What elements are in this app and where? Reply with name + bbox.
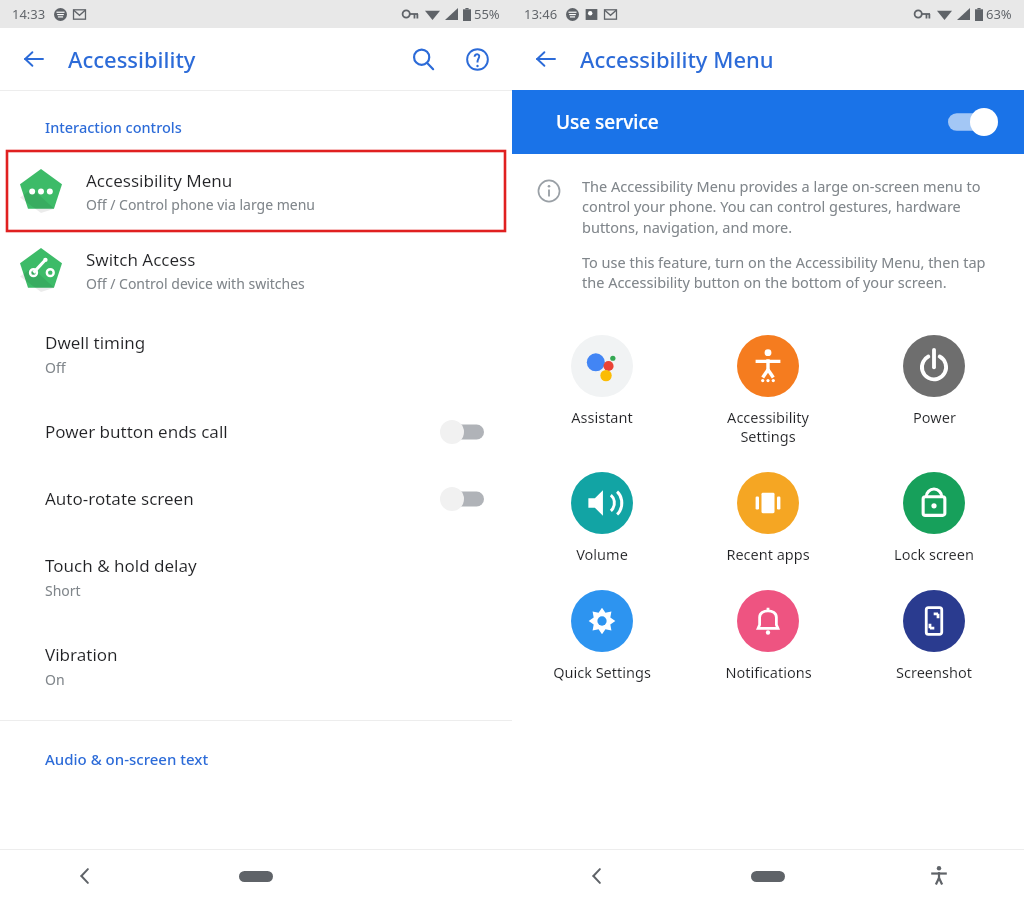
button[interactable]: Lock screen: [851, 468, 1017, 568]
staticText: Use service: [556, 109, 659, 135]
staticText: Screenshot: [896, 662, 972, 682]
staticText: Accessibility Menu: [86, 169, 233, 192]
button[interactable]: Dwell timing: [0, 309, 512, 398]
button[interactable]: Accessibility: [853, 850, 1024, 902]
button[interactable]: Help: [456, 38, 498, 80]
staticText: Interaction controls: [45, 117, 182, 137]
staticText: Off / Control phone via large menu: [86, 195, 315, 214]
button[interactable]: Back: [0, 850, 170, 902]
staticText: The Accessibility Menu provides a large …: [582, 176, 1006, 238]
staticText: Switch Access: [86, 248, 196, 271]
staticText: 63%: [986, 5, 1012, 23]
staticText: 13:46: [524, 5, 558, 23]
button[interactable]: Accessibility Settings: [685, 331, 851, 450]
staticText: Off / Control device with switches: [86, 274, 305, 293]
button[interactable]: Power button ends call: [0, 398, 512, 465]
staticText: Accessibility: [68, 44, 196, 74]
button[interactable]: Use service: [512, 90, 1024, 154]
button[interactable]: Accessibility Menu: [7, 151, 505, 231]
staticText: Power button ends call: [45, 420, 228, 443]
button[interactable]: Touch & hold delay: [0, 532, 512, 621]
staticText: To use this feature, turn on the Accessi…: [582, 252, 1006, 293]
button[interactable]: Auto-rotate screen: [0, 465, 512, 532]
staticText: On: [45, 670, 65, 689]
staticText: Volume: [576, 544, 628, 564]
button[interactable]: Back: [512, 850, 682, 902]
staticText: Short: [45, 581, 81, 600]
staticText: Notifications: [725, 662, 812, 682]
staticText: Recent apps: [726, 544, 810, 564]
staticText: Assistant: [571, 407, 633, 427]
button[interactable]: Notifications: [685, 586, 851, 686]
staticText: Quick Settings: [553, 662, 651, 682]
staticText: Auto-rotate screen: [45, 487, 194, 510]
button[interactable]: Quick Settings: [519, 586, 685, 686]
button[interactable]: Volume: [519, 468, 685, 568]
button[interactable]: Screenshot: [851, 586, 1017, 686]
button[interactable]: Power: [851, 331, 1017, 431]
button[interactable]: Audio & on-screen text: [45, 749, 209, 769]
staticText: Accessibility Settings: [727, 407, 809, 446]
button[interactable]: Assistant: [519, 331, 685, 431]
staticText: Lock screen: [894, 544, 974, 564]
button[interactable]: Home: [170, 850, 341, 902]
button[interactable]: Switch Access: [0, 231, 512, 309]
staticText: Touch & hold delay: [45, 554, 197, 577]
staticText: Accessibility Menu: [580, 44, 774, 74]
button[interactable]: Back: [526, 39, 566, 79]
staticText: Vibration: [45, 643, 118, 666]
staticText: Power: [913, 407, 956, 427]
staticText: 14:33: [12, 5, 46, 23]
button[interactable]: Recent apps: [685, 468, 851, 568]
button[interactable]: Vibration: [0, 621, 512, 710]
button[interactable]: Search: [402, 38, 444, 80]
staticText: Off: [45, 358, 66, 377]
staticText: Dwell timing: [45, 331, 146, 354]
staticText: 55%: [474, 5, 500, 23]
button[interactable]: Back: [14, 39, 54, 79]
button[interactable]: Home: [682, 850, 853, 902]
